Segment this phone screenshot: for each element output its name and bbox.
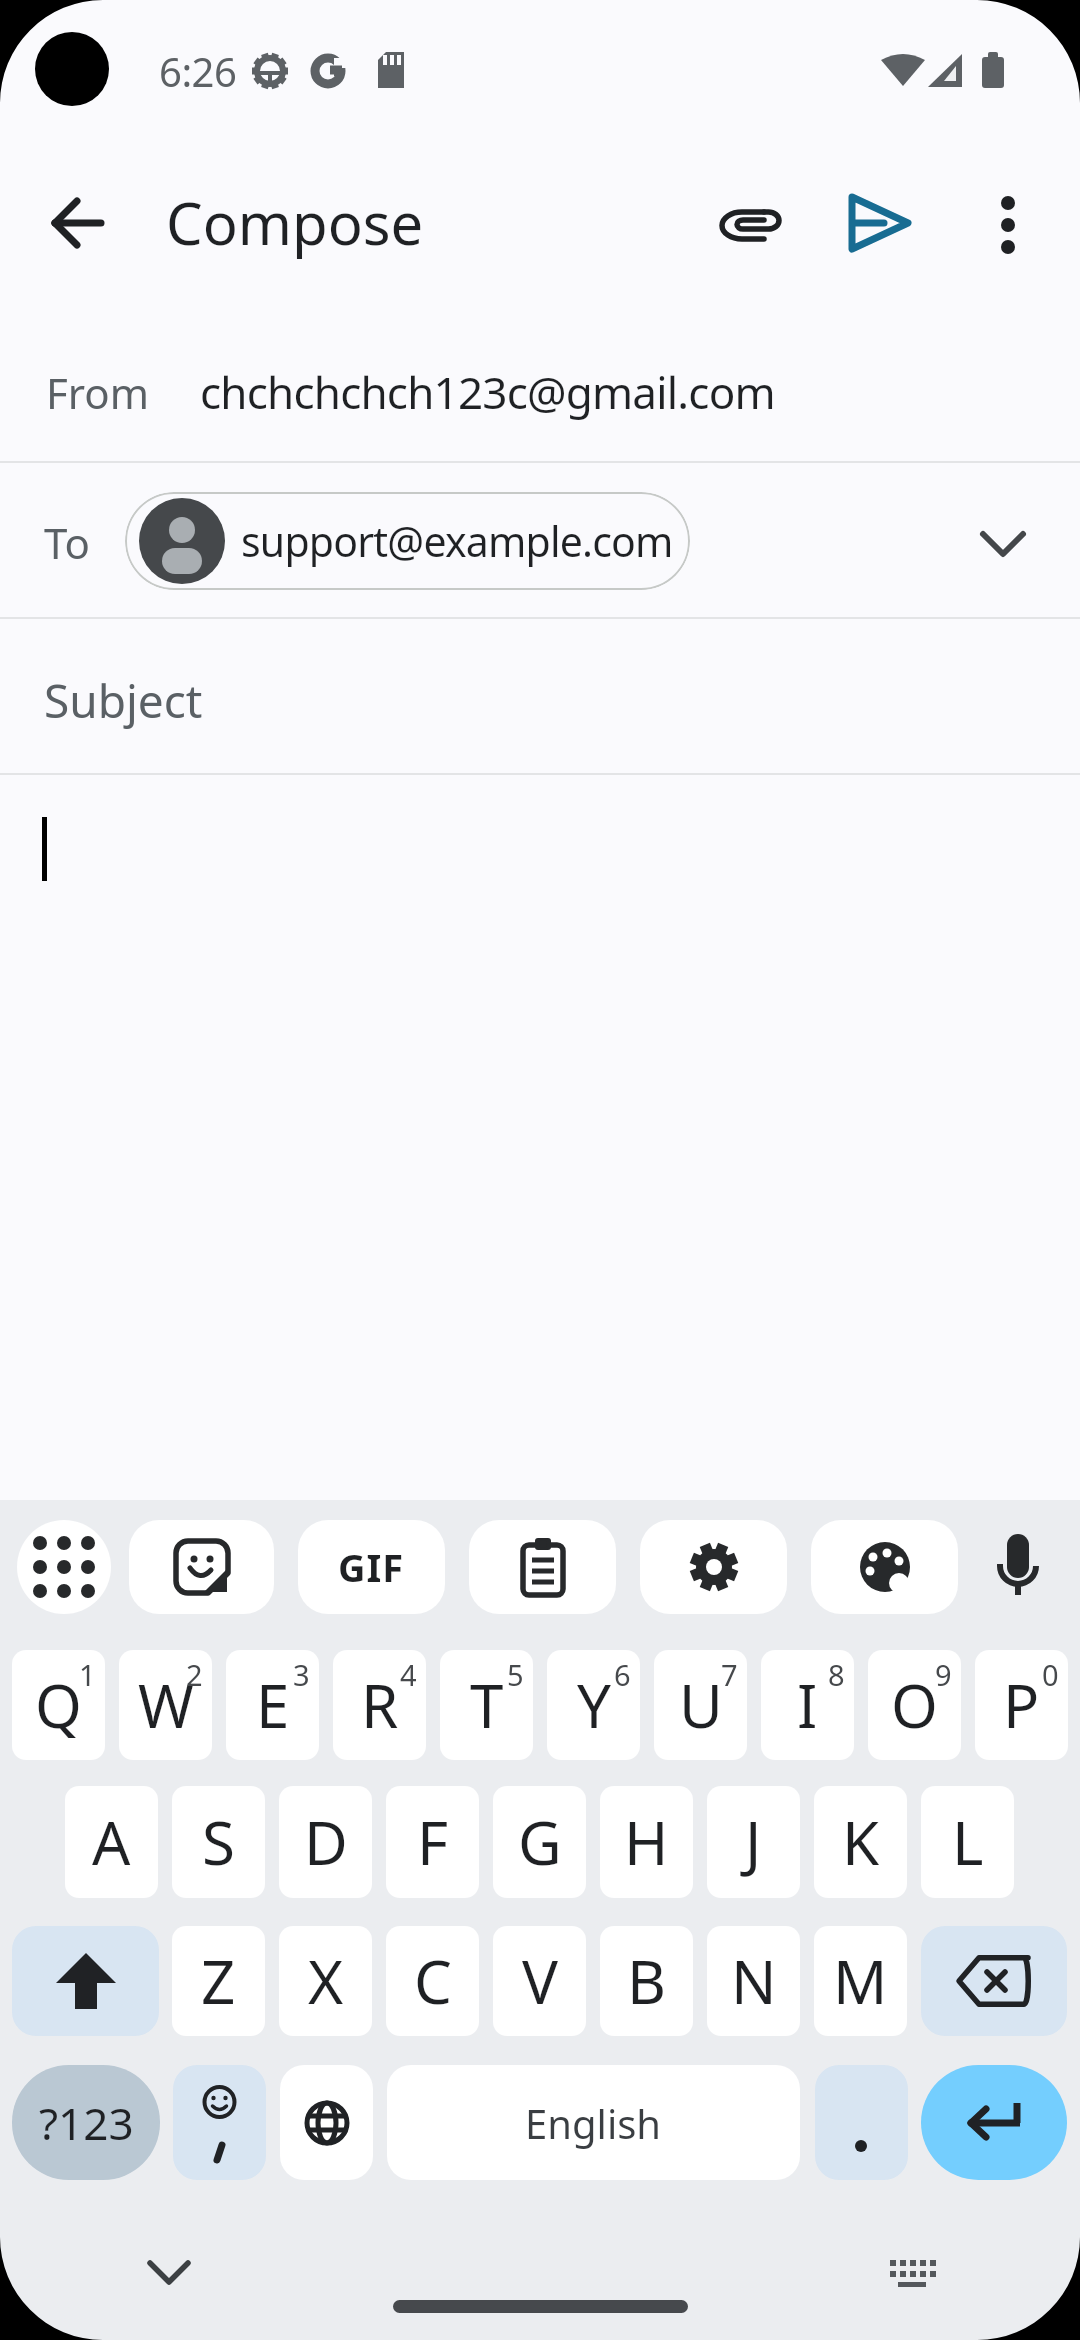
button[interactable] — [975, 516, 1035, 568]
staticText: chchchchch123c@gmail.com — [200, 362, 775, 422]
staticText: A — [92, 1801, 131, 1883]
staticText: B — [627, 1940, 666, 2022]
staticText: 7 — [721, 1655, 738, 1694]
staticText: 2 — [186, 1655, 203, 1694]
staticText: 8 — [828, 1655, 845, 1694]
staticText: K — [842, 1801, 880, 1883]
button[interactable] — [30, 175, 126, 271]
button[interactable] — [975, 1520, 1061, 1614]
button[interactable]: V — [493, 1926, 586, 2036]
button[interactable]: ?123 — [12, 2065, 160, 2180]
staticText: F — [417, 1801, 449, 1883]
button[interactable]: J — [707, 1786, 800, 1898]
button[interactable]: N — [707, 1926, 800, 2036]
button[interactable] — [469, 1520, 616, 1614]
staticText: S — [202, 1801, 235, 1883]
staticText: 1 — [79, 1655, 96, 1694]
button[interactable] — [832, 175, 928, 271]
staticText: 0 — [1042, 1655, 1059, 1694]
button[interactable] — [280, 2065, 373, 2180]
button[interactable] — [811, 1520, 958, 1614]
staticText: M — [833, 1940, 888, 2022]
button[interactable]: R — [333, 1650, 426, 1760]
button[interactable]: support@example.com — [125, 492, 690, 590]
staticText: English — [525, 2096, 662, 2150]
button[interactable]: A — [65, 1786, 158, 1898]
button[interactable] — [865, 2224, 961, 2320]
staticText: J — [745, 1801, 762, 1883]
staticText: I — [797, 1664, 818, 1746]
button[interactable] — [960, 175, 1056, 271]
button[interactable] — [640, 1520, 787, 1614]
staticText: U — [679, 1664, 723, 1746]
button[interactable]: W — [119, 1650, 212, 1760]
staticText: 6 — [614, 1655, 631, 1694]
button[interactable]: X — [279, 1926, 372, 2036]
button[interactable] — [121, 2224, 217, 2320]
staticText: V — [522, 1940, 558, 2022]
button[interactable]: E — [226, 1650, 319, 1760]
staticText: R — [361, 1664, 399, 1746]
staticText: Subject — [44, 669, 203, 732]
staticText: X — [308, 1940, 344, 2022]
staticText: P — [1003, 1664, 1040, 1746]
button[interactable] — [129, 1520, 274, 1614]
staticText: 6:26 — [159, 44, 237, 98]
staticText: GIF — [338, 1541, 405, 1593]
staticText: N — [731, 1940, 777, 2022]
button[interactable]: Y — [547, 1650, 640, 1760]
staticText: From — [46, 364, 149, 421]
button[interactable] — [0, 775, 1080, 1500]
button[interactable]: B — [600, 1926, 693, 2036]
button[interactable]: English — [387, 2065, 800, 2180]
staticText: T — [470, 1664, 504, 1746]
button[interactable]: K — [814, 1786, 907, 1898]
button[interactable]: C — [386, 1926, 479, 2036]
staticText: 3 — [293, 1655, 310, 1694]
staticText: D — [304, 1801, 348, 1883]
button[interactable]: GIF — [298, 1520, 445, 1614]
button[interactable]: G — [493, 1786, 586, 1898]
button[interactable]: M — [814, 1926, 907, 2036]
button[interactable]: I — [761, 1650, 854, 1760]
staticText: W — [138, 1664, 194, 1746]
staticText: G — [518, 1801, 562, 1883]
button[interactable] — [17, 1520, 111, 1614]
button[interactable] — [12, 1926, 159, 2036]
staticText: L — [952, 1801, 984, 1883]
button[interactable]: O — [868, 1650, 961, 1760]
staticText: E — [256, 1664, 290, 1746]
button[interactable] — [921, 2065, 1067, 2180]
button[interactable] — [173, 2065, 266, 2180]
button[interactable]: S — [172, 1786, 265, 1898]
staticText: 9 — [935, 1655, 952, 1694]
button[interactable]: Z — [172, 1926, 265, 2036]
staticText: Q — [35, 1664, 82, 1746]
button[interactable] — [0, 300, 1080, 461]
button[interactable] — [0, 619, 1080, 774]
button[interactable]: D — [279, 1786, 372, 1898]
button[interactable]: L — [921, 1786, 1014, 1898]
button[interactable]: U — [654, 1650, 747, 1760]
staticText: Compose — [166, 183, 424, 262]
button[interactable]: Q — [12, 1650, 105, 1760]
staticText: Z — [201, 1940, 236, 2022]
button[interactable] — [815, 2065, 908, 2180]
button[interactable]: F — [386, 1786, 479, 1898]
button[interactable]: H — [600, 1786, 693, 1898]
button[interactable]: P — [975, 1650, 1068, 1760]
button[interactable] — [702, 175, 798, 271]
staticText: O — [891, 1664, 938, 1746]
staticText: H — [624, 1801, 669, 1883]
staticText: Y — [577, 1664, 611, 1746]
button[interactable]: T — [440, 1650, 533, 1760]
staticText: To — [44, 514, 90, 571]
staticText: support@example.com — [241, 513, 673, 569]
button[interactable] — [921, 1926, 1067, 2036]
staticText: C — [414, 1940, 452, 2022]
staticText: ?123 — [39, 2093, 134, 2153]
staticText: 4 — [400, 1655, 417, 1694]
staticText: 5 — [507, 1655, 524, 1694]
